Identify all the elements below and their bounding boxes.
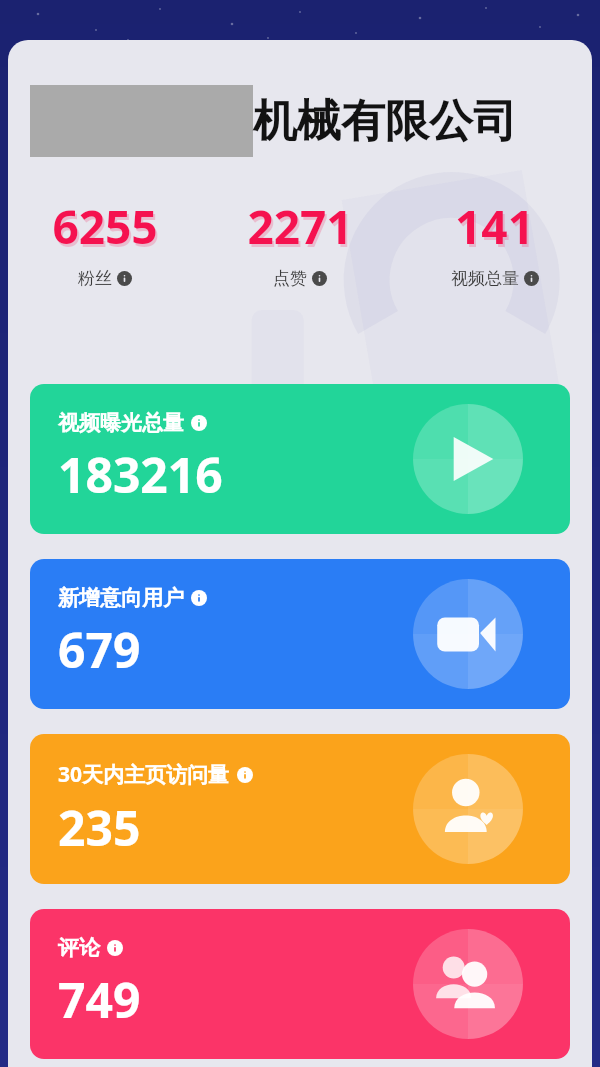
staticText: 679 [58,617,141,682]
staticText: 141 [455,195,534,258]
staticText: 新增意向用户 [58,585,184,611]
staticText: 235 [58,795,141,860]
staticText: 评论 [58,935,100,961]
button[interactable]: 评论 [30,909,570,1059]
staticText: 2271 [247,195,353,258]
button[interactable]: 新增意向用户 [30,559,570,709]
button[interactable]: 6255 [8,195,202,289]
button[interactable]: 机械有限公司 [30,85,578,157]
staticText: 30天内主页访问量 [58,760,230,789]
button[interactable]: 2271 [202,195,397,289]
staticText: 2271 [249,198,355,261]
staticText: 6255 [52,195,158,258]
staticText: 机械有限公司 [253,94,517,149]
staticText: 视频总量 [451,268,519,289]
staticText: 141 [457,198,536,261]
button[interactable]: 141 [397,195,592,289]
staticText: 183216 [58,442,223,507]
staticText: 6255 [54,198,160,261]
staticText: 视频曝光总量 [58,410,184,436]
staticText: 点赞 [273,268,307,289]
staticText: 粉丝 [78,268,112,289]
staticText: 749 [58,967,141,1032]
button[interactable]: 视频曝光总量 [30,384,570,534]
button[interactable]: 30天内主页访问量 [30,734,570,884]
